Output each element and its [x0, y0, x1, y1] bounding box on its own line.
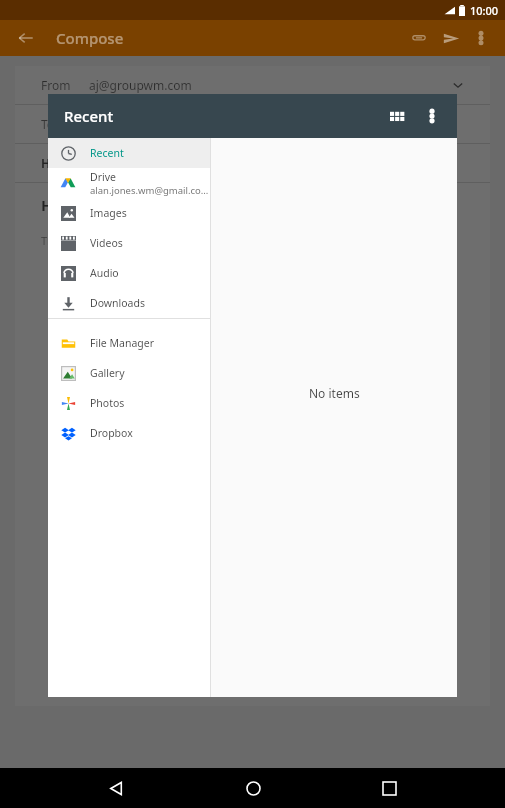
- staticText: Thanks: [41, 233, 79, 248]
- staticText: From: [41, 77, 71, 93]
- staticText: Recent: [64, 106, 114, 126]
- button[interactable]: Dropbox: [48, 418, 210, 448]
- staticText: Hello: [41, 155, 72, 171]
- button[interactable]: Downloads: [48, 288, 210, 318]
- staticText: Downloads: [90, 296, 145, 310]
- staticText: 10:00: [470, 3, 499, 18]
- staticText: Drive: [90, 170, 116, 184]
- button[interactable]: Recent apps: [369, 768, 409, 808]
- button[interactable]: Back: [96, 768, 136, 808]
- staticText: File Manager: [90, 336, 155, 350]
- staticText: Gallery: [90, 366, 125, 380]
- button[interactable]: More options: [471, 28, 491, 48]
- staticText: No items: [309, 385, 360, 401]
- staticText: aj@groupwm.com: [89, 77, 192, 93]
- staticText: To: [41, 116, 55, 132]
- button[interactable]: Recent: [48, 138, 210, 168]
- button[interactable]: File Manager: [48, 328, 210, 358]
- button[interactable]: Gallery: [48, 358, 210, 388]
- staticText: Videos: [90, 236, 123, 250]
- staticText: Recent: [90, 146, 124, 160]
- button[interactable]: Grid view: [381, 100, 413, 132]
- staticText: Photos: [90, 396, 125, 410]
- button[interactable]: Back: [14, 26, 38, 50]
- button[interactable]: Photos: [48, 388, 210, 418]
- staticText: alan.jones.wm@gmail.co...: [90, 184, 209, 197]
- button[interactable]: Drive: [48, 168, 210, 198]
- button[interactable]: Home: [233, 768, 273, 808]
- button[interactable]: Images: [48, 198, 210, 228]
- button[interactable]: Videos: [48, 228, 210, 258]
- staticText: Hi: [41, 195, 57, 215]
- staticText: Images: [90, 206, 127, 220]
- staticText: Compose: [56, 28, 124, 48]
- staticText: Audio: [90, 266, 119, 280]
- button[interactable]: Send: [439, 26, 463, 50]
- staticText: Dropbox: [90, 426, 133, 440]
- button[interactable]: Attach file: [407, 26, 431, 50]
- button[interactable]: Audio: [48, 258, 210, 288]
- button[interactable]: More options: [417, 101, 447, 131]
